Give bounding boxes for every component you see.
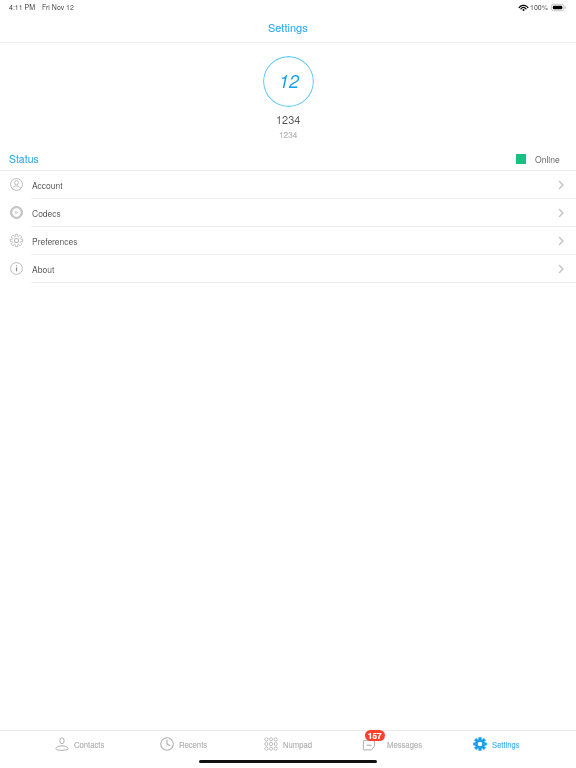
staticText: Numpad <box>283 739 313 750</box>
staticText: Online <box>535 153 560 165</box>
button[interactable]: Settings <box>444 731 548 756</box>
staticText: Preferences <box>32 235 78 247</box>
staticText: 4:11 PM <box>9 2 36 12</box>
button[interactable]: Preferences <box>0 227 576 255</box>
staticText: Account <box>32 179 63 191</box>
staticText: Status <box>9 151 39 166</box>
staticText: Settings <box>268 19 308 35</box>
staticText: Recents <box>179 739 208 750</box>
staticText: 1234 <box>279 128 298 140</box>
button[interactable]: Recents <box>132 731 236 756</box>
staticText: Messages <box>387 739 423 750</box>
button[interactable]: Account <box>0 171 576 199</box>
other: Battery full <box>551 4 566 11</box>
button[interactable]: 12 <box>263 56 314 107</box>
staticText: 157 <box>368 730 382 741</box>
staticText: 12 <box>279 68 300 93</box>
button[interactable]: Messages <box>340 731 444 756</box>
button[interactable]: Online <box>516 153 560 165</box>
staticText: Codecs <box>32 207 61 219</box>
other: Wi-Fi signal <box>519 4 528 11</box>
staticText: 100% <box>530 2 548 12</box>
button[interactable]: About <box>0 255 576 283</box>
button[interactable]: Numpad <box>236 731 340 756</box>
staticText: Contacts <box>74 739 105 750</box>
staticText: Fri Nov 12 <box>42 2 74 12</box>
button[interactable]: Contacts <box>28 731 132 756</box>
staticText: Settings <box>492 739 520 750</box>
staticText: 1234 <box>276 111 301 127</box>
staticText: About <box>32 263 55 275</box>
button[interactable]: Codecs <box>0 199 576 227</box>
